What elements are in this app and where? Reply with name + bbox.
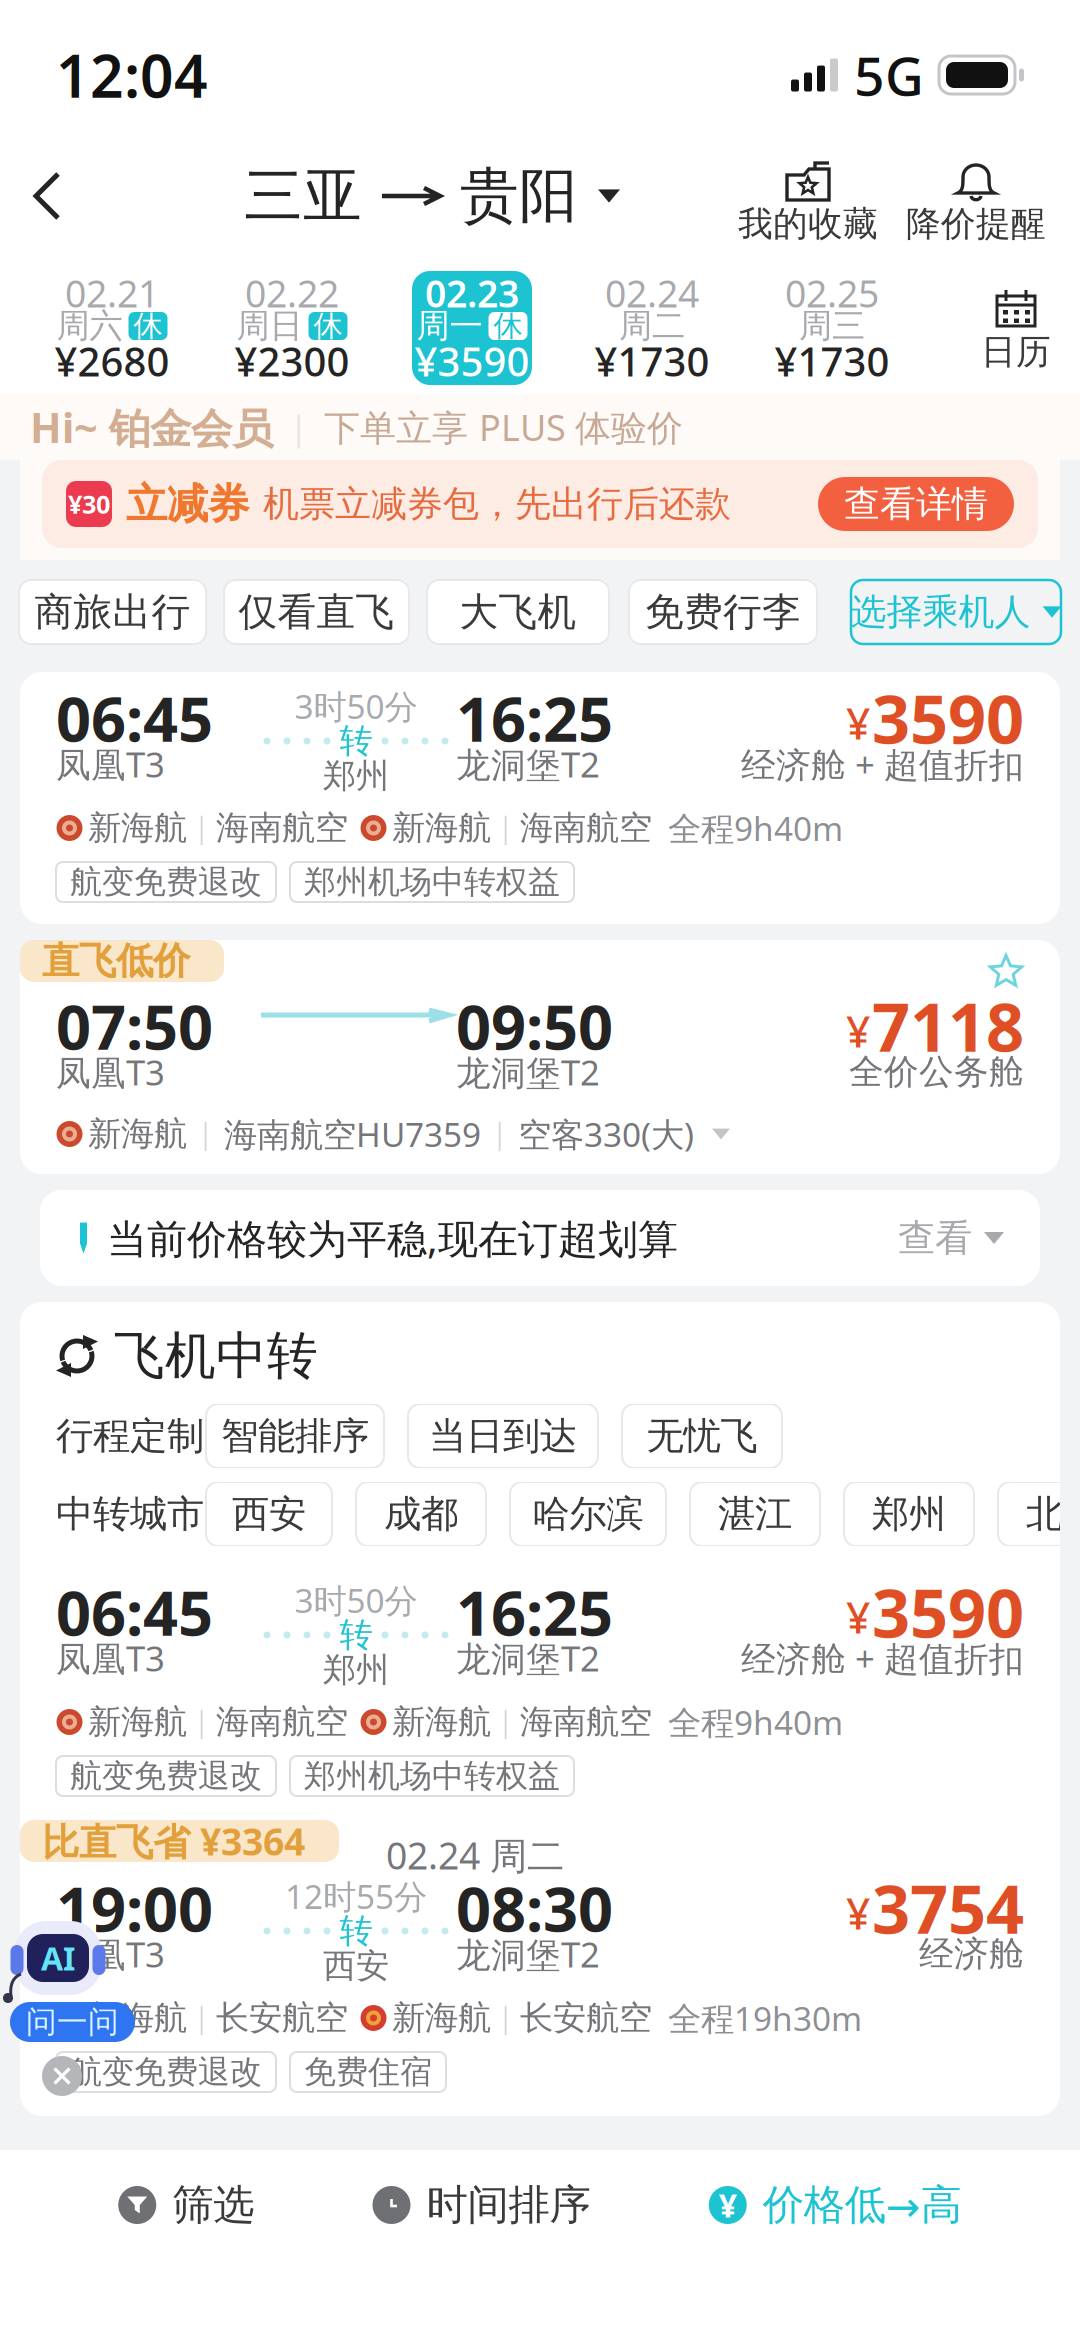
staticText: 筛选 — [172, 2180, 254, 2230]
staticText: 贵阳 — [460, 160, 578, 232]
staticText: 全价公务舱 — [849, 1051, 1024, 1093]
staticText: 海南航空 — [520, 1701, 652, 1742]
staticText: 新海航 — [88, 1701, 187, 1742]
button[interactable]: 湛江 — [690, 1482, 820, 1546]
button[interactable]: ¥30 — [20, 460, 1060, 560]
button[interactable]: 02.23 — [382, 262, 562, 394]
staticText: 12时55分 — [285, 1874, 427, 1918]
button[interactable]: ¥ — [709, 2184, 962, 2226]
button[interactable]: 商旅出行 — [19, 580, 206, 644]
staticText: 新海航 — [392, 807, 491, 848]
staticText: 选择乘机人 — [850, 590, 1030, 634]
staticText: 立减券 — [126, 479, 249, 529]
staticText: 时间排序 — [426, 2180, 590, 2230]
staticText: 经济舱 — [919, 1933, 1024, 1975]
staticText: ¥2300 — [234, 334, 349, 387]
staticText: 12:04 — [56, 36, 208, 114]
staticText: 直飞低价 — [42, 938, 190, 984]
staticText: 仅看直飞 — [238, 588, 394, 636]
button[interactable]: 当前价格较为平稳,现在订超划算 — [20, 1190, 1060, 1302]
button[interactable]: 02.22 — [202, 262, 382, 394]
staticText: 郑州机场中转权益 — [304, 862, 560, 902]
staticText: 智能排序 — [221, 1413, 369, 1459]
staticText: 转 — [339, 1614, 372, 1655]
button[interactable]: 成都 — [356, 1482, 486, 1546]
staticText: 凤凰T3 — [56, 1635, 165, 1681]
staticText: 龙洞堡T2 — [456, 1049, 600, 1095]
staticText: ¥30 — [68, 487, 110, 521]
staticText: 19:00 — [56, 1867, 213, 1949]
staticText: 海南航空HU7359 — [224, 1112, 481, 1156]
button[interactable]: 三亚 — [244, 150, 620, 222]
staticText: 查看 — [898, 1215, 972, 1261]
staticText: 转 — [339, 720, 372, 761]
button[interactable]: 06:45 — [20, 1568, 1060, 1820]
button[interactable]: 北京 — [998, 1482, 1080, 1546]
button[interactable]: 日历 — [952, 262, 1080, 394]
button[interactable]: 免费行李 — [629, 580, 817, 644]
button[interactable]: 问一问 — [10, 2002, 135, 2042]
staticText: 价格低→高 — [763, 2180, 962, 2230]
staticText: 问一问 — [26, 2003, 119, 2041]
button[interactable]: 02.24 周二 — [20, 1820, 1060, 2116]
staticText: 龙洞堡T2 — [456, 1635, 600, 1681]
staticText: 5G — [854, 40, 924, 110]
staticText: ¥ — [846, 1589, 870, 1645]
staticText: 湛江 — [718, 1491, 792, 1537]
staticText: 当前价格较为平稳,现在订超划算 — [107, 1211, 678, 1264]
staticText: ｜ — [187, 1704, 216, 1740]
button[interactable]: AI assistant — [10, 1916, 106, 2000]
button[interactable]: 02.25 — [742, 262, 922, 394]
button[interactable]: 智能排序 — [206, 1404, 384, 1468]
staticText: ¥3590 — [414, 334, 529, 387]
staticText: 查看详情 — [844, 482, 988, 526]
button[interactable]: Close — [42, 2056, 82, 2096]
button[interactable]: 筛选 — [118, 2184, 254, 2226]
staticText: 北京 — [1026, 1491, 1080, 1537]
staticText: ¥2680 — [54, 334, 169, 387]
button[interactable]: 郑州 — [844, 1482, 974, 1546]
button[interactable]: 选择乘机人 — [851, 580, 1061, 644]
staticText: 06:45 — [56, 1571, 213, 1653]
staticText: 周六 — [56, 305, 122, 346]
staticText: 龙洞堡T2 — [456, 741, 600, 787]
staticText: ｜ — [187, 810, 216, 846]
button[interactable]: 当日到达 — [408, 1404, 598, 1468]
staticText: ｜ — [191, 1116, 220, 1152]
staticText: ｜ — [187, 2000, 216, 2036]
staticText: 转 — [339, 1910, 372, 1951]
staticText: 航变免费退改 — [70, 2052, 262, 2092]
staticText: 07:50 — [56, 985, 213, 1067]
staticText: ｜ — [491, 2000, 520, 2036]
staticText: 09:50 — [456, 985, 613, 1067]
button[interactable]: 我的收藏 — [738, 150, 878, 240]
button[interactable]: 06:45 — [0, 664, 1080, 940]
staticText: 经济舱 + 超值折扣 — [741, 1635, 1024, 1681]
button[interactable]: 大飞机 — [427, 580, 609, 644]
button[interactable]: 西安 — [206, 1482, 332, 1546]
button[interactable]: 仅看直飞 — [224, 580, 409, 644]
button[interactable]: 哈尔滨 — [510, 1482, 666, 1546]
staticText: 商旅出行 — [34, 588, 190, 636]
button[interactable]: 02.21 — [22, 262, 202, 394]
staticText: 中转城市 — [56, 1491, 204, 1537]
staticText: ¥ — [719, 2184, 737, 2226]
button[interactable]: Back — [34, 150, 126, 228]
button[interactable]: 降价提醒 — [878, 150, 1046, 240]
staticText: 长安航空 — [520, 1997, 652, 2038]
staticText: 3590 — [872, 1568, 1024, 1656]
button[interactable]: 02.24 — [562, 262, 742, 394]
staticText: 02.23 — [425, 268, 519, 318]
staticText: ¥1730 — [594, 334, 709, 387]
staticText: 02.25 — [785, 268, 879, 318]
staticText: 新海航 — [88, 1997, 187, 2038]
staticText: 凤凰T3 — [56, 1049, 165, 1095]
button[interactable]: 无忧飞 — [622, 1404, 782, 1468]
staticText: 免费住宿 — [304, 2052, 432, 2092]
staticText: 16:25 — [456, 1571, 613, 1653]
staticText: 3754 — [872, 1864, 1024, 1952]
staticText: 当日到达 — [429, 1413, 577, 1459]
button[interactable]: 时间排序 — [372, 2184, 590, 2226]
staticText: 02.24 周二 — [386, 1830, 564, 1880]
button[interactable]: 07:50 — [0, 940, 1080, 1190]
